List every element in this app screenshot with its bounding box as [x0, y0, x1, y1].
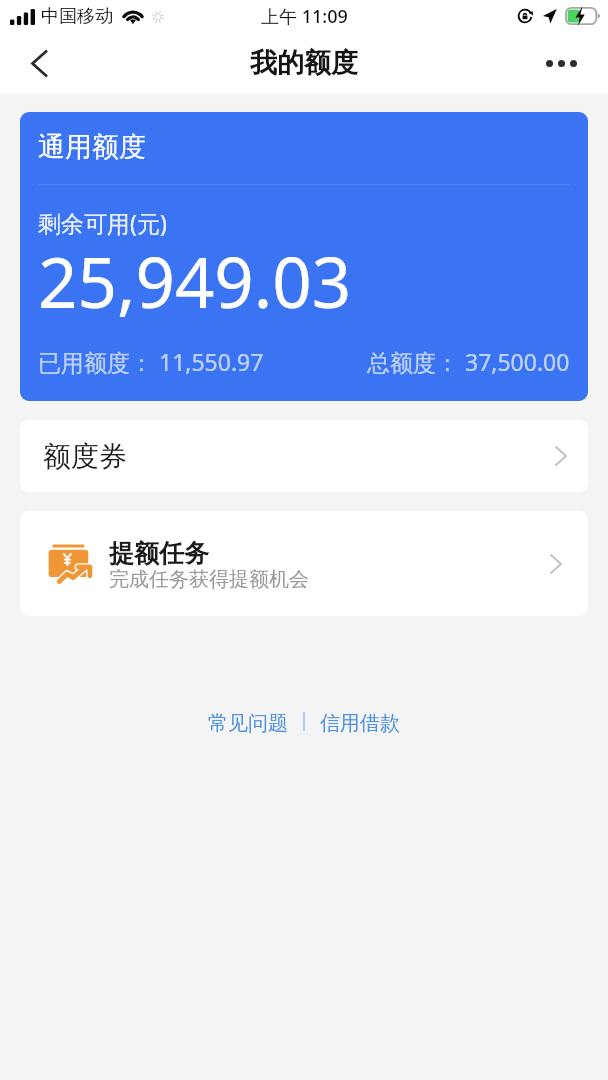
button[interactable]: 常见问题 — [204, 707, 292, 740]
staticText: 剩余可用(元) — [38, 207, 167, 238]
staticText: 25,949.03 — [38, 234, 352, 328]
staticText: 提额任务 — [109, 538, 209, 569]
staticText: 信用借款 — [320, 711, 400, 736]
staticText: 总额度： 37,500.00 — [367, 346, 570, 377]
button[interactable]: Back — [11, 35, 67, 91]
button[interactable]: More options — [533, 35, 589, 91]
staticText: 通用额度 — [38, 130, 146, 164]
button[interactable]: 通用额度 — [20, 112, 588, 401]
button[interactable]: 信用借款 — [316, 707, 404, 740]
staticText: 上午 11:09 — [261, 4, 348, 29]
staticText: 常见问题 — [208, 711, 288, 736]
button[interactable]: 提额任务 — [20, 511, 588, 616]
staticText: 已用额度： 11,550.97 — [38, 346, 264, 377]
staticText: 中国移动 — [41, 5, 113, 28]
staticText: 我的额度 — [250, 46, 358, 80]
staticText: 完成任务获得提额机会 — [109, 567, 309, 592]
staticText: 额度券 — [43, 439, 127, 474]
button[interactable]: 额度券 — [20, 420, 588, 492]
